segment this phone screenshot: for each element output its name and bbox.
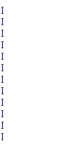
staticText: I [1,97,4,108]
staticText: I [1,132,4,142]
staticText: I [1,17,4,27]
staticText: I [1,5,4,16]
staticText: I [1,86,4,96]
staticText: I [1,120,4,131]
staticText: I [1,40,4,50]
staticText: I [1,74,4,85]
staticText: I [1,63,4,73]
staticText: I [1,28,4,39]
staticText: I [1,51,4,62]
staticText: I [1,109,4,119]
